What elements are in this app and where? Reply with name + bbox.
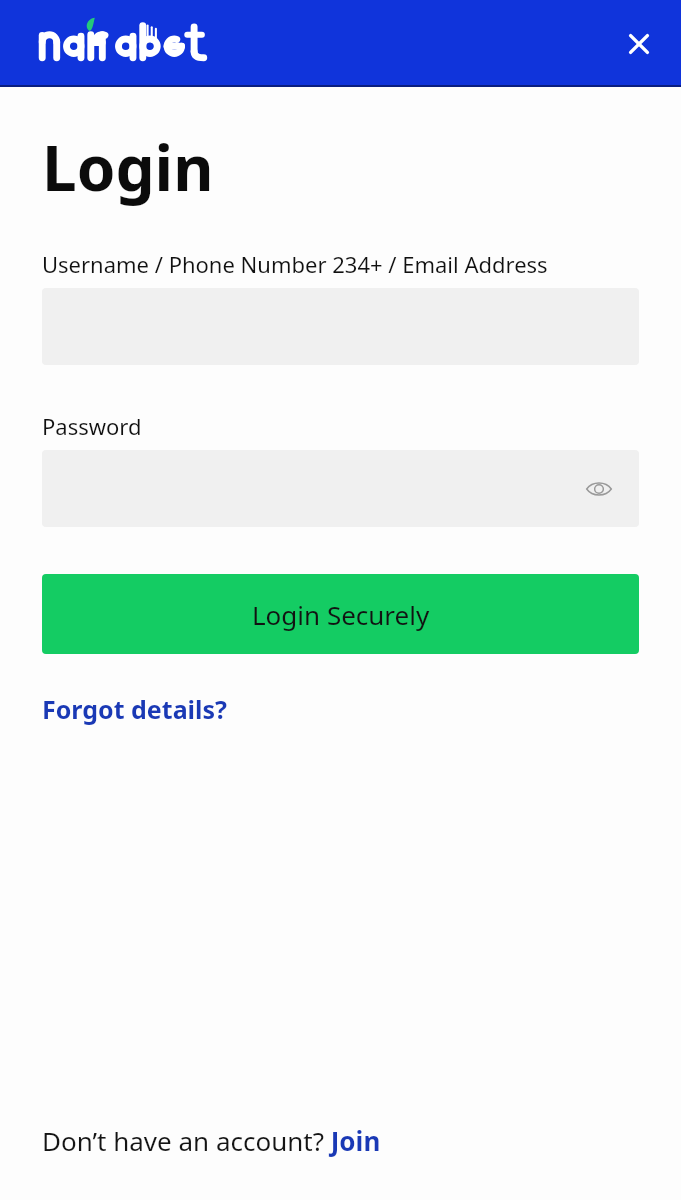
staticText: Forgot details? [42,692,228,726]
button[interactable]: Don’t have an account? Join [42,1123,381,1158]
button[interactable]: Login Securely [42,574,639,654]
staticText: Login Securely [252,597,430,632]
staticText: Username / Phone Number 234+ / Email Add… [42,249,548,279]
staticText: Password [42,411,142,441]
staticText: Login [42,125,214,209]
staticText: Don’t have an account? Join [42,1123,381,1158]
button[interactable]: Forgot details? [42,692,228,726]
button[interactable]: Close [619,24,659,64]
button[interactable]: Show password [42,450,639,527]
button[interactable]: Show password [581,471,617,507]
